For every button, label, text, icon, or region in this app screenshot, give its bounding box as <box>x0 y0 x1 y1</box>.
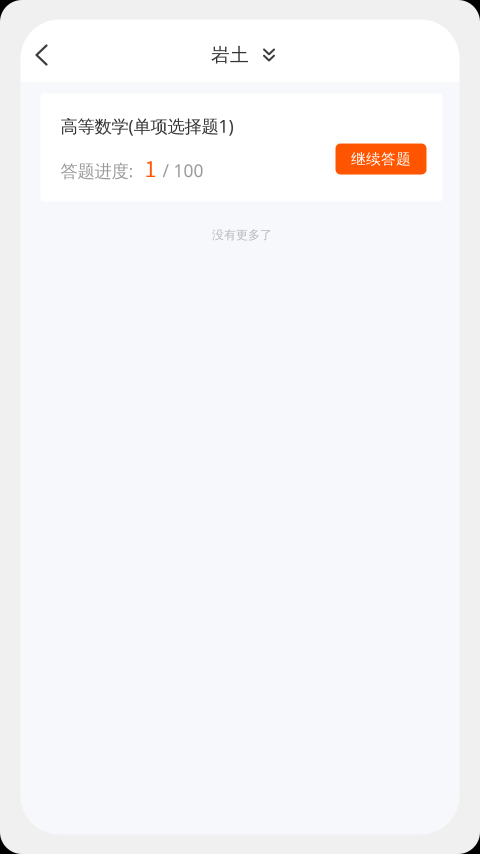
button[interactable]: 岩土 <box>203 37 283 72</box>
button[interactable]: 继续答题 <box>335 143 426 174</box>
button[interactable]: Back <box>19 33 63 77</box>
staticText: 高等数学(单项选择题1) <box>60 114 233 137</box>
staticText: 继续答题 <box>351 150 411 168</box>
staticText: 没有更多了 <box>212 227 272 242</box>
staticText: / 100 <box>162 159 203 182</box>
staticText: 1 <box>144 153 156 183</box>
staticText: 岩土 <box>211 43 249 66</box>
staticText: 答题进度: <box>60 159 133 182</box>
